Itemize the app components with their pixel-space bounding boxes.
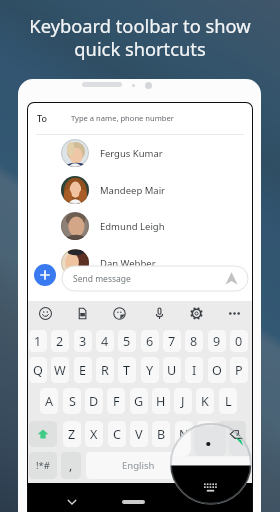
staticText: Edmund Leigh: [100, 220, 165, 233]
staticText: English: [122, 459, 155, 472]
staticText: U: [167, 362, 177, 379]
button[interactable]: A: [40, 388, 58, 414]
button[interactable]: Z: [63, 421, 81, 447]
button[interactable]: Home: [122, 500, 145, 504]
button[interactable]: More options: [226, 305, 243, 322]
button[interactable]: G: [130, 388, 148, 414]
button[interactable]: .: [195, 452, 215, 479]
staticText: I: [192, 362, 197, 379]
staticText: V: [135, 426, 143, 443]
button[interactable]: S: [63, 388, 81, 414]
staticText: 2: [56, 333, 64, 350]
button[interactable]: C: [108, 421, 126, 447]
staticText: Dan Webber: [100, 257, 156, 270]
staticText: 4: [101, 333, 109, 350]
button[interactable]: H: [152, 388, 170, 414]
button[interactable]: 7: [163, 330, 181, 352]
staticText: B: [157, 426, 166, 443]
button[interactable]: 1: [29, 330, 47, 352]
staticText: 3: [79, 333, 87, 350]
button[interactable]: Settings: [188, 305, 205, 322]
staticText: To: [37, 112, 47, 124]
staticText: W: [54, 362, 66, 379]
button[interactable]: Back: [66, 496, 78, 508]
staticText: F: [113, 393, 120, 410]
button[interactable]: 3: [74, 330, 92, 352]
button[interactable]: 8: [185, 330, 203, 352]
button[interactable]: B: [152, 421, 170, 447]
button[interactable]: Mandeep Mair: [28, 173, 252, 207]
button[interactable]: F: [107, 388, 125, 414]
button[interactable]: Start new conversation: [34, 264, 56, 286]
button[interactable]: 6: [141, 330, 159, 352]
button[interactable]: E: [74, 357, 92, 383]
staticText: G: [134, 393, 144, 410]
button[interactable]: M: [197, 421, 215, 447]
button[interactable]: !*#: [29, 452, 57, 479]
button[interactable]: Emoji: [37, 305, 54, 322]
staticText: 9: [213, 333, 221, 350]
button[interactable]: J: [174, 388, 192, 414]
button[interactable]: Fergus Kumar: [28, 136, 252, 170]
button[interactable]: P: [230, 357, 248, 383]
staticText: X: [90, 426, 98, 443]
button[interactable]: 2: [51, 330, 69, 352]
button[interactable]: R: [96, 357, 114, 383]
staticText: J: [181, 393, 185, 410]
button[interactable]: Y: [141, 357, 159, 383]
staticText: Mandeep Mair: [100, 184, 166, 197]
button[interactable]: Edmund Leigh: [28, 209, 252, 243]
button[interactable]: 5: [118, 330, 136, 352]
button[interactable]: 9: [208, 330, 226, 352]
button[interactable]: T: [118, 357, 136, 383]
button[interactable]: Stickers: [111, 305, 128, 322]
button[interactable]: N: [175, 421, 193, 447]
staticText: Z: [68, 426, 76, 443]
staticText: 5: [123, 333, 131, 350]
button[interactable]: U: [163, 357, 181, 383]
staticText: P: [235, 362, 243, 379]
staticText: K: [201, 393, 209, 410]
staticText: D: [89, 393, 99, 410]
staticText: 0: [235, 333, 243, 350]
button[interactable]: W: [51, 357, 69, 383]
staticText: M: [200, 426, 212, 443]
staticText: Y: [146, 362, 154, 379]
button[interactable]: Q: [29, 357, 47, 383]
button[interactable]: GIF: [74, 305, 91, 322]
staticText: L: [225, 393, 232, 410]
button[interactable]: I: [185, 357, 203, 383]
staticText: C: [113, 426, 121, 443]
button[interactable]: V: [130, 421, 148, 447]
button[interactable]: English: [86, 452, 191, 479]
button[interactable]: Shift: [29, 421, 57, 447]
staticText: Keyboard toolbar to show quick shortcuts: [29, 13, 251, 62]
staticText: Fergus Kumar: [100, 147, 163, 160]
button[interactable]: L: [219, 388, 237, 414]
button[interactable]: ,: [61, 452, 81, 479]
staticText: H: [156, 393, 166, 410]
button[interactable]: K: [196, 388, 214, 414]
staticText: S: [69, 393, 76, 410]
staticText: .: [203, 457, 207, 474]
button[interactable]: Enter: [218, 452, 246, 479]
staticText: 1: [34, 333, 42, 350]
button[interactable]: Voice input: [151, 305, 168, 322]
staticText: T: [123, 362, 131, 379]
staticText: Q: [33, 362, 43, 379]
button[interactable]: Dan Webber: [28, 246, 252, 280]
staticText: E: [79, 362, 87, 379]
button[interactable]: D: [85, 388, 103, 414]
staticText: A: [45, 393, 54, 410]
button[interactable]: Send message: [62, 266, 248, 291]
button[interactable]: Backspace: [218, 421, 246, 447]
staticText: N: [179, 426, 189, 443]
staticText: 8: [190, 333, 198, 350]
button[interactable]: X: [85, 421, 103, 447]
button[interactable]: 0: [230, 330, 248, 352]
button[interactable]: To: [28, 103, 252, 134]
button[interactable]: 4: [96, 330, 114, 352]
button[interactable]: O: [208, 357, 226, 383]
staticText: 7: [168, 333, 176, 350]
staticText: R: [101, 362, 109, 379]
